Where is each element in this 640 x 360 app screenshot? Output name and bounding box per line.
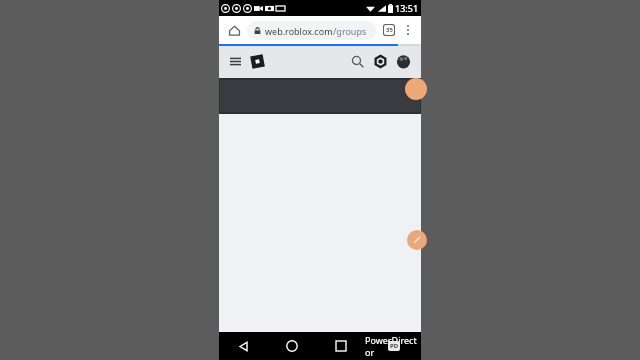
button[interactable] [220,80,420,112]
button[interactable]: More options [399,21,417,39]
button[interactable]: Recent apps [316,332,365,360]
staticText: PD [390,342,399,350]
button[interactable]: Home [267,332,316,360]
staticText: 35 [386,26,393,34]
button[interactable]: Search [347,51,367,71]
button[interactable]: Floating action [405,78,427,100]
button[interactable]: web.roblox.com [247,21,376,40]
button[interactable]: Home [223,19,245,41]
staticText: 13:51 [395,2,419,14]
button[interactable]: Back [219,332,267,360]
button[interactable]: Menu [226,52,244,70]
staticText: /groups [333,25,367,37]
staticText: web.roblox.com [265,25,333,37]
button[interactable]: Profile [392,50,414,72]
button[interactable]: Robux [369,50,391,72]
button[interactable]: Tabs [379,20,399,40]
button[interactable]: Edit [407,230,427,250]
staticText: PowerDirector [365,334,421,358]
